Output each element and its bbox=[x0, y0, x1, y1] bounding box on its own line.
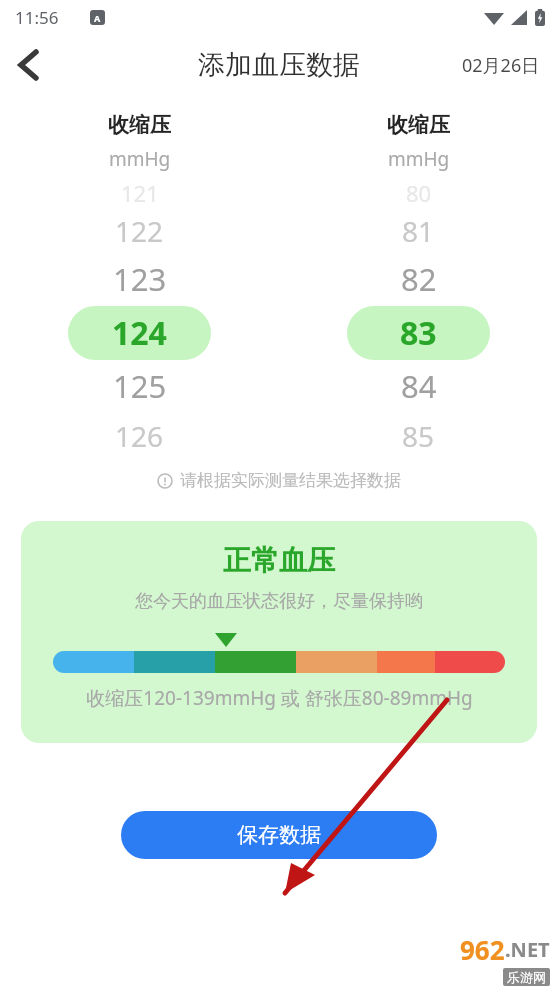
staticText: 请根据实际测量结果选择数据 bbox=[180, 470, 401, 491]
staticText: 收缩压 bbox=[108, 112, 171, 138]
button[interactable]: 02月26日 bbox=[462, 53, 540, 78]
staticText: 添加血压数据 bbox=[198, 48, 360, 82]
staticText: 11:56 bbox=[15, 6, 59, 29]
staticText: 正常血压 bbox=[223, 543, 335, 578]
staticText: 82 bbox=[401, 258, 437, 300]
staticText: 126 bbox=[115, 417, 164, 455]
staticText: 962 bbox=[460, 932, 505, 967]
staticText: 83 bbox=[400, 311, 437, 355]
staticText: 121 bbox=[121, 178, 159, 208]
staticText: 乐游网 bbox=[507, 969, 546, 985]
button[interactable]: Back bbox=[0, 37, 56, 93]
staticText: 124 bbox=[112, 311, 167, 355]
staticText: 123 bbox=[113, 258, 167, 300]
button[interactable]: 124 bbox=[68, 306, 211, 360]
staticText: 81 bbox=[402, 212, 435, 250]
staticText: A bbox=[94, 12, 101, 24]
staticText: .NET bbox=[505, 936, 550, 963]
staticText: 80 bbox=[406, 178, 432, 208]
staticText: mmHg bbox=[388, 146, 450, 172]
staticText: mmHg bbox=[109, 146, 171, 172]
staticText: 122 bbox=[115, 212, 164, 250]
staticText: 收缩压120-139mmHg 或 舒张压80-89mmHg bbox=[86, 685, 473, 711]
staticText: 85 bbox=[402, 417, 435, 455]
staticText: 收缩压 bbox=[387, 112, 450, 138]
staticText: 125 bbox=[113, 365, 167, 407]
staticText: 您今天的血压状态很好，尽量保持哟 bbox=[135, 590, 423, 613]
staticText: 84 bbox=[401, 365, 437, 407]
button[interactable]: 保存数据 bbox=[121, 811, 437, 859]
button[interactable]: 83 bbox=[347, 306, 490, 360]
staticText: 保存数据 bbox=[237, 822, 321, 848]
